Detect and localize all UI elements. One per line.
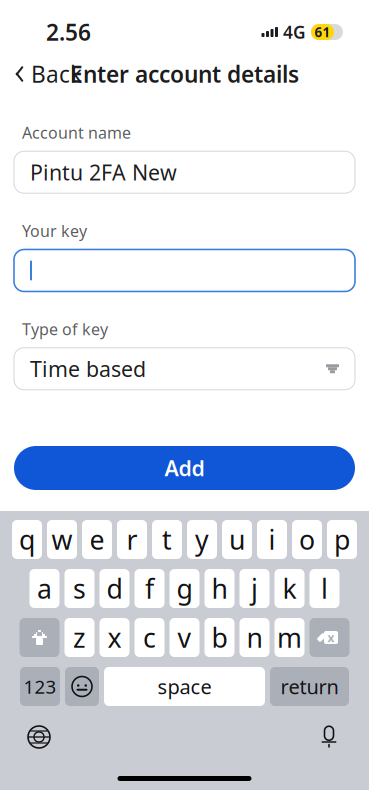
staticText: i [268,522,275,557]
staticText: m [277,620,302,655]
staticText: d [106,571,122,606]
button[interactable]: o [292,520,322,559]
staticText: z [73,620,86,655]
staticText: f [145,571,154,606]
button[interactable]: f [134,569,164,608]
button[interactable]: Time based [14,348,355,390]
button[interactable]: k [274,569,304,608]
button[interactable]: d [99,569,129,608]
button[interactable]: w [47,520,77,559]
button[interactable]: q [12,520,42,559]
button[interactable]: i [257,520,287,559]
staticText: 61 [314,23,330,41]
button[interactable] [14,249,355,291]
staticText: Back [31,59,82,89]
button[interactable]: c [134,618,164,657]
button[interactable]: j [239,569,269,608]
button[interactable]: v [169,618,199,657]
staticText: x [327,629,334,645]
button[interactable]: Pintu 2FA New [14,151,355,193]
staticText: h [211,571,227,606]
button[interactable]: space [104,667,265,706]
button[interactable]: m [274,618,304,657]
button[interactable]: l [309,569,339,608]
staticText: y [195,522,209,557]
button[interactable]: a [29,569,59,608]
staticText: r [126,522,137,557]
staticText: b [211,620,227,655]
staticText: v [177,620,191,655]
button[interactable]: g [169,569,199,608]
staticText: Time based [30,355,146,383]
button[interactable]: n [239,618,269,657]
staticText: t [162,522,172,557]
staticText: o [299,522,315,557]
button[interactable]: Delete [309,618,349,657]
staticText: a [37,571,52,606]
button[interactable]: Shift [19,618,59,657]
button[interactable]: Add [14,446,355,490]
staticText: p [334,522,350,557]
button[interactable]: y [187,520,217,559]
staticText: q [19,522,35,557]
button[interactable]: x [99,618,129,657]
staticText: 4G [283,20,306,43]
button[interactable]: e [82,520,112,559]
button[interactable]: u [222,520,252,559]
button[interactable]: r [117,520,147,559]
staticText: w [51,522,72,557]
staticText: 123 [23,674,56,699]
button[interactable]: t [152,520,182,559]
staticText: c [143,620,156,655]
button[interactable]: z [64,618,94,657]
button[interactable]: h [204,569,234,608]
staticText: l [321,571,328,606]
button[interactable]: p [327,520,357,559]
staticText: Add [164,454,204,482]
staticText: Enter account details [70,59,299,89]
button[interactable]: Dictation [317,716,369,758]
button[interactable]: 123 [20,667,60,706]
staticText: n [246,620,262,655]
staticText: return [280,673,338,700]
staticText: k [282,571,296,606]
staticText: Pintu 2FA New [30,158,177,186]
button[interactable]: s [64,569,94,608]
button[interactable]: Change keyboard [0,717,51,757]
staticText: Type of key [22,318,108,340]
staticText: space [157,673,211,700]
staticText: g [176,571,192,606]
staticText: Your key [22,220,87,241]
staticText: Account name [22,122,131,143]
staticText: e [89,522,104,557]
staticText: u [229,522,245,557]
button[interactable]: b [204,618,234,657]
staticText: 2.56 [46,17,91,47]
button[interactable]: Back [0,51,82,97]
button[interactable]: return [270,667,349,706]
staticText: s [73,571,86,606]
staticText: x [107,620,121,655]
staticText: j [251,571,258,606]
button[interactable]: Emoji [65,667,99,706]
